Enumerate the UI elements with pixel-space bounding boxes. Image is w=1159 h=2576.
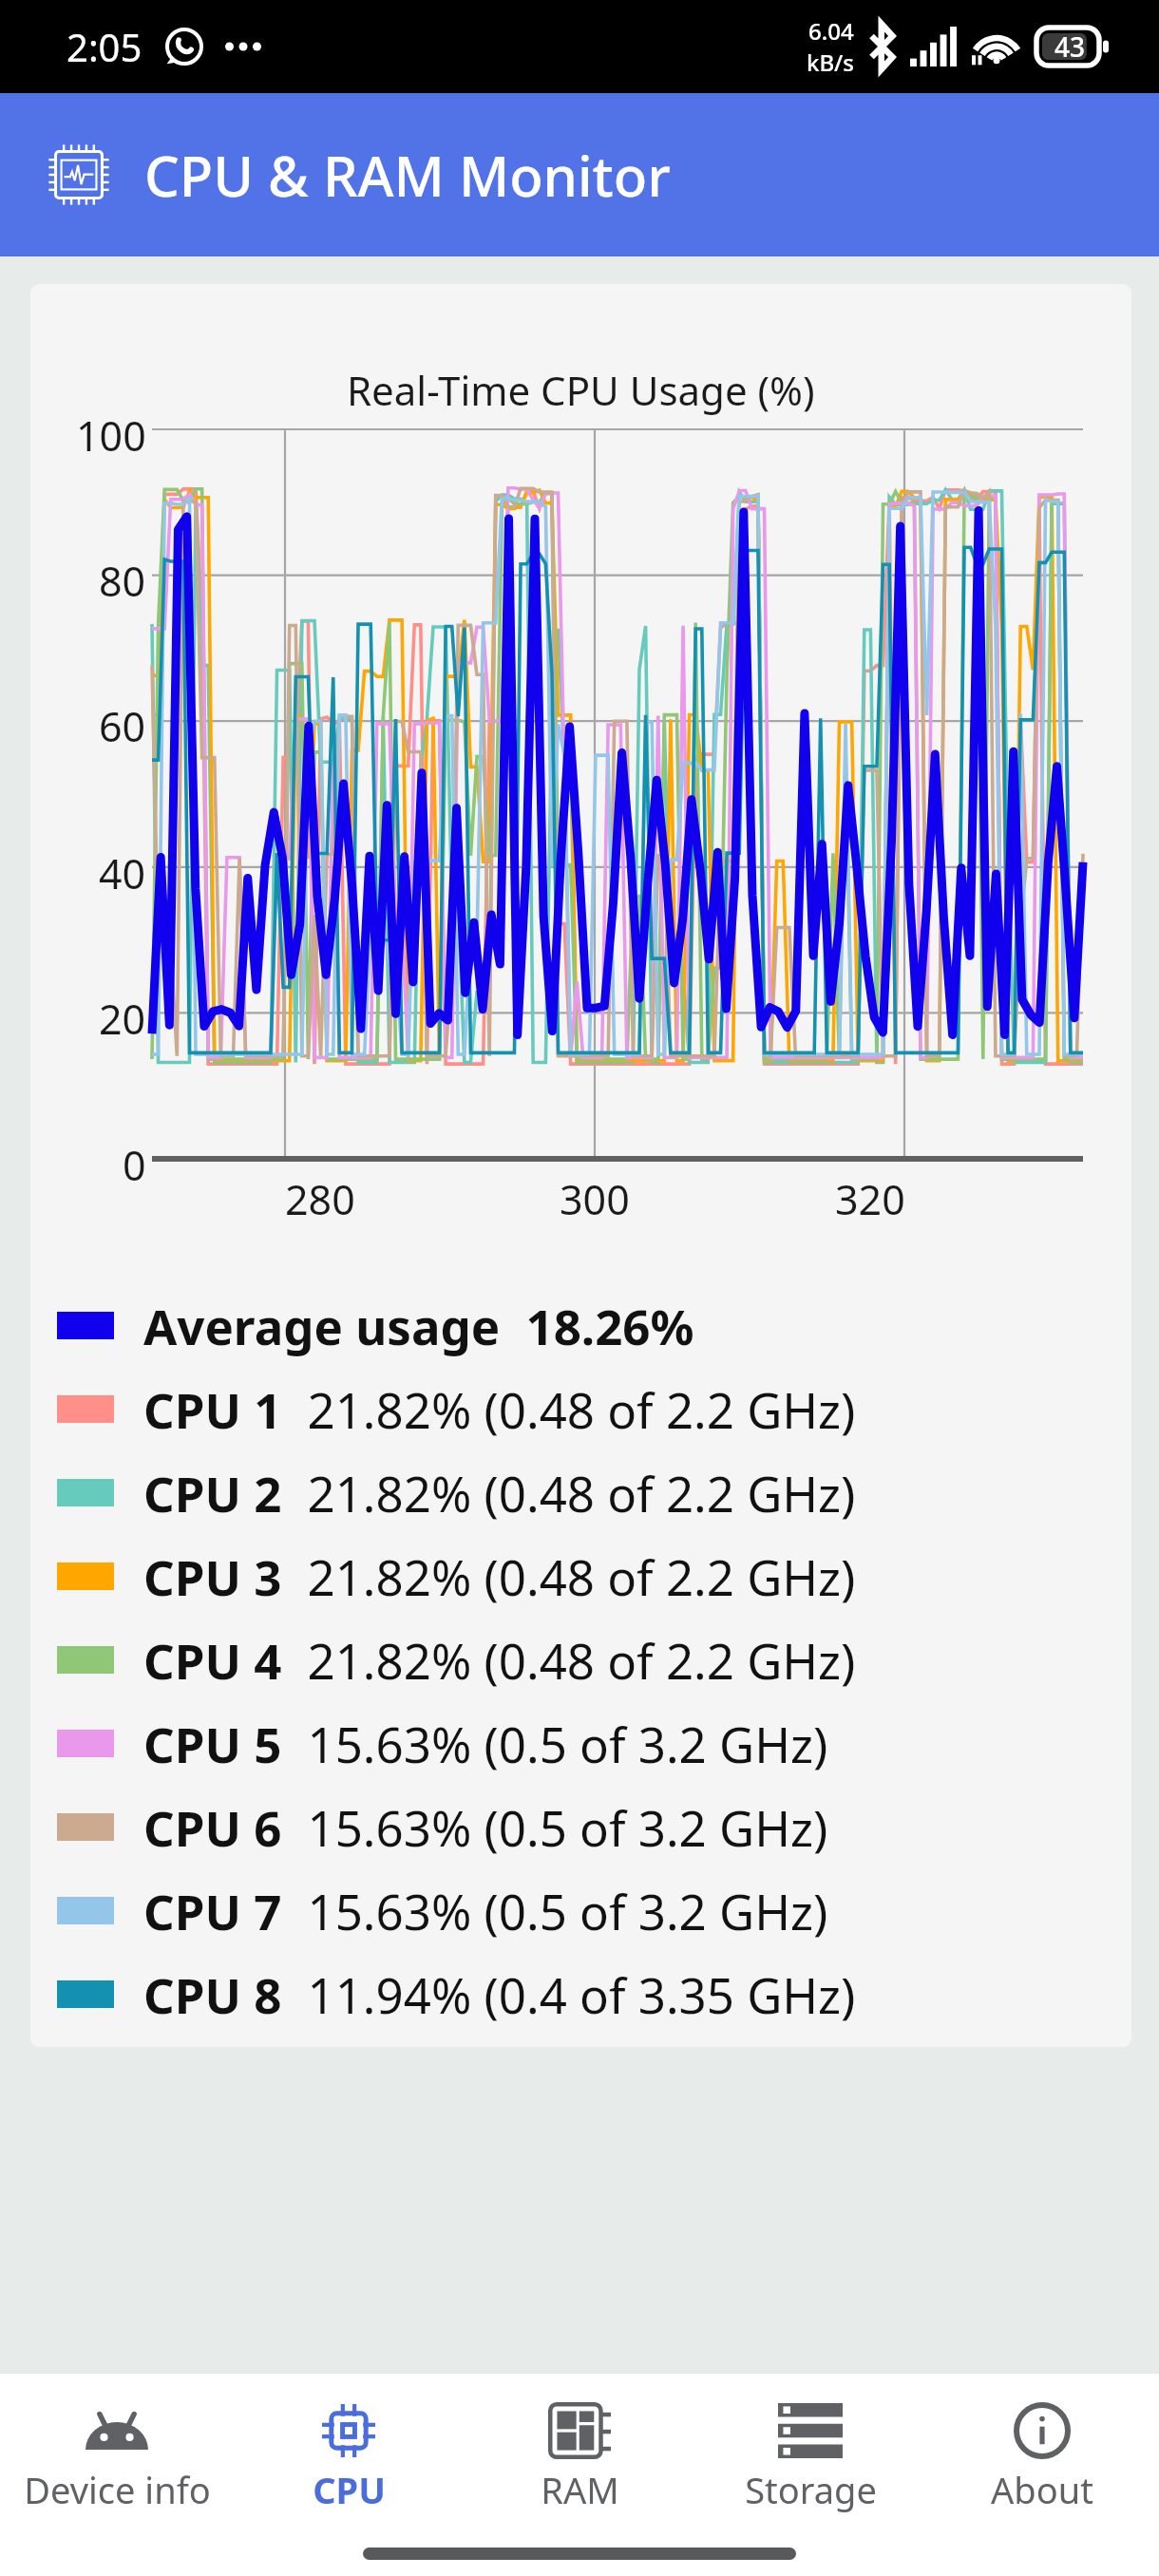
staticText: 280 xyxy=(285,1171,355,1227)
other: Storage xyxy=(778,2403,843,2458)
staticText: CPU 6 xyxy=(143,1794,282,1860)
staticText: Storage xyxy=(745,2465,877,2514)
staticText: 21.82% (0.48 of 2.2 GHz) xyxy=(282,1376,856,1442)
staticText: CPU 3 xyxy=(143,1544,282,1609)
staticText: 6.04 xyxy=(808,15,854,47)
staticText: RAM xyxy=(541,2465,619,2514)
staticText: kB/s xyxy=(807,47,855,78)
button[interactable]: Storage xyxy=(696,2374,924,2531)
staticText: CPU 4 xyxy=(143,1627,282,1693)
staticText: 21.82% (0.48 of 2.2 GHz) xyxy=(282,1460,856,1525)
button[interactable]: CPU and RAM monitor xyxy=(0,93,1159,256)
button[interactable]: CPU 2 xyxy=(30,1450,1131,1534)
staticText: 20 xyxy=(99,991,146,1047)
staticText: 2:05 xyxy=(66,21,142,72)
staticText: CPU & RAM Monitor xyxy=(144,138,671,213)
button[interactable]: CPU 7 xyxy=(30,1868,1131,1952)
staticText: 0 xyxy=(123,1137,146,1193)
staticText: 15.63% (0.5 of 3.2 GHz) xyxy=(282,1711,828,1776)
other: Device info xyxy=(85,2412,148,2450)
button[interactable]: CPU 3 xyxy=(30,1534,1131,1618)
staticText: 100 xyxy=(76,407,146,464)
staticText: 11.94% (0.4 of 3.35 GHz) xyxy=(282,1961,856,2027)
staticText: CPU 7 xyxy=(143,1878,282,1943)
staticText: 40 xyxy=(99,845,146,901)
staticText: About xyxy=(991,2465,1093,2514)
staticText: 43 xyxy=(1054,28,1086,65)
staticText: Average usage xyxy=(143,1293,501,1358)
staticText: 320 xyxy=(835,1171,905,1227)
staticText: 21.82% (0.48 of 2.2 GHz) xyxy=(282,1544,856,1609)
staticText: CPU xyxy=(313,2465,386,2514)
staticText: 80 xyxy=(99,553,146,609)
other: About xyxy=(1013,2401,1072,2460)
staticText: Real-Time CPU Usage (%) xyxy=(347,363,815,417)
button[interactable]: Device info xyxy=(3,2374,231,2531)
staticText: 21.82% (0.48 of 2.2 GHz) xyxy=(282,1627,856,1693)
staticText: 18.26% xyxy=(501,1293,694,1358)
other: RAM xyxy=(548,2402,611,2459)
staticText: 15.63% (0.5 of 3.2 GHz) xyxy=(282,1794,828,1860)
staticText: 15.63% (0.5 of 3.2 GHz) xyxy=(282,1878,828,1943)
button[interactable]: CPU 6 xyxy=(30,1785,1131,1868)
button[interactable]: CPU 5 xyxy=(30,1701,1131,1785)
other: CPU xyxy=(322,2404,375,2457)
button[interactable]: About xyxy=(928,2374,1156,2531)
staticText: CPU 8 xyxy=(143,1961,282,2027)
staticText: CPU 2 xyxy=(143,1460,282,1525)
staticText: CPU 5 xyxy=(143,1711,282,1776)
button[interactable]: RAM xyxy=(465,2374,693,2531)
staticText: CPU 1 xyxy=(143,1376,282,1442)
staticText: 60 xyxy=(99,698,146,754)
staticText: 300 xyxy=(560,1171,630,1227)
staticText: Device info xyxy=(24,2465,211,2514)
button[interactable]: CPU 1 xyxy=(30,1367,1131,1450)
other: CPU and RAM monitor xyxy=(45,141,113,209)
button[interactable]: CPU xyxy=(235,2374,463,2531)
button[interactable]: Average usage xyxy=(30,1283,1131,1367)
button[interactable]: CPU 4 xyxy=(30,1618,1131,1701)
button[interactable]: CPU 8 xyxy=(30,1952,1131,2036)
